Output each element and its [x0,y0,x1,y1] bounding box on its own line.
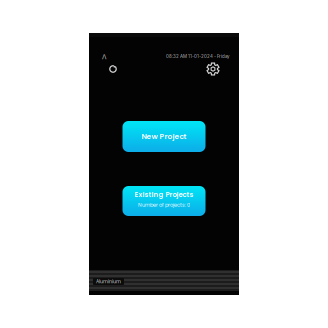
button[interactable]: Settings [204,60,222,78]
staticText: Number of projects: 0 [138,201,190,209]
button[interactable]: New Project [122,121,205,152]
staticText: New Project [141,131,186,142]
staticText: Λ [102,52,106,61]
staticText: Existing Projects [134,190,193,199]
staticText: Aluminium [96,278,121,285]
staticText: 08:32 AM 11-01-2024 - Friday [166,54,229,59]
button[interactable]: Aluminium [93,278,124,285]
button[interactable]: Existing Projects [122,186,205,216]
button[interactable]: Refresh [105,61,121,77]
